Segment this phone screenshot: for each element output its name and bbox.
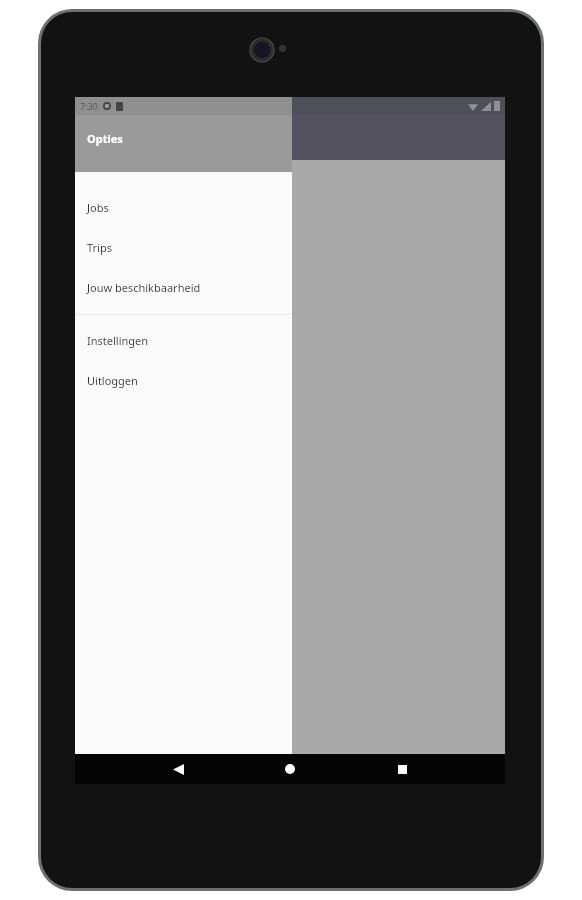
button[interactable]: 31/07/2021 08:00 - 17:00: [87, 329, 495, 488]
staticText: Pokon: [87, 377, 116, 390]
staticText: 31/07/2021 08:00 - 17:00: [87, 329, 220, 345]
staticText: Bijdevole Kerstmarkt: [87, 272, 180, 285]
staticText: 10062: [87, 189, 120, 205]
staticText: 7:30: [80, 100, 98, 112]
button[interactable]: Jouw beschikbaarheid: [75, 267, 292, 307]
button[interactable]: Recent apps: [346, 754, 458, 784]
button[interactable]: Uitloggen: [75, 360, 292, 400]
staticText: 20/06/2021: [87, 170, 149, 186]
button[interactable]: [75, 97, 505, 784]
staticText: Trips: [87, 240, 112, 255]
button[interactable]: Back: [122, 754, 234, 784]
staticText: Instellingen: [87, 333, 149, 348]
button[interactable]: 20/06/2021: [87, 170, 495, 329]
staticText: Vetselweg 4: [87, 236, 141, 249]
button[interactable]: 31/07/2021 08:00 - 17:00: [87, 488, 495, 647]
button[interactable]: Home: [234, 754, 346, 784]
staticText: 20/06/2021 09:52 job klaar gemeld door: [87, 290, 266, 303]
staticText: Opties: [87, 131, 123, 146]
staticText: Jouw beschikbaarheid: [87, 280, 201, 295]
button[interactable]: Instellingen: [75, 320, 292, 360]
staticText: NL-3751 LS Bunschoten: [87, 254, 193, 267]
button[interactable]: Jobs: [75, 187, 292, 227]
staticText: Jobs: [87, 200, 109, 215]
button[interactable]: Trips: [75, 227, 292, 267]
staticText: Uitloggen: [87, 373, 138, 388]
staticText: Richard Jansen: [87, 308, 153, 321]
